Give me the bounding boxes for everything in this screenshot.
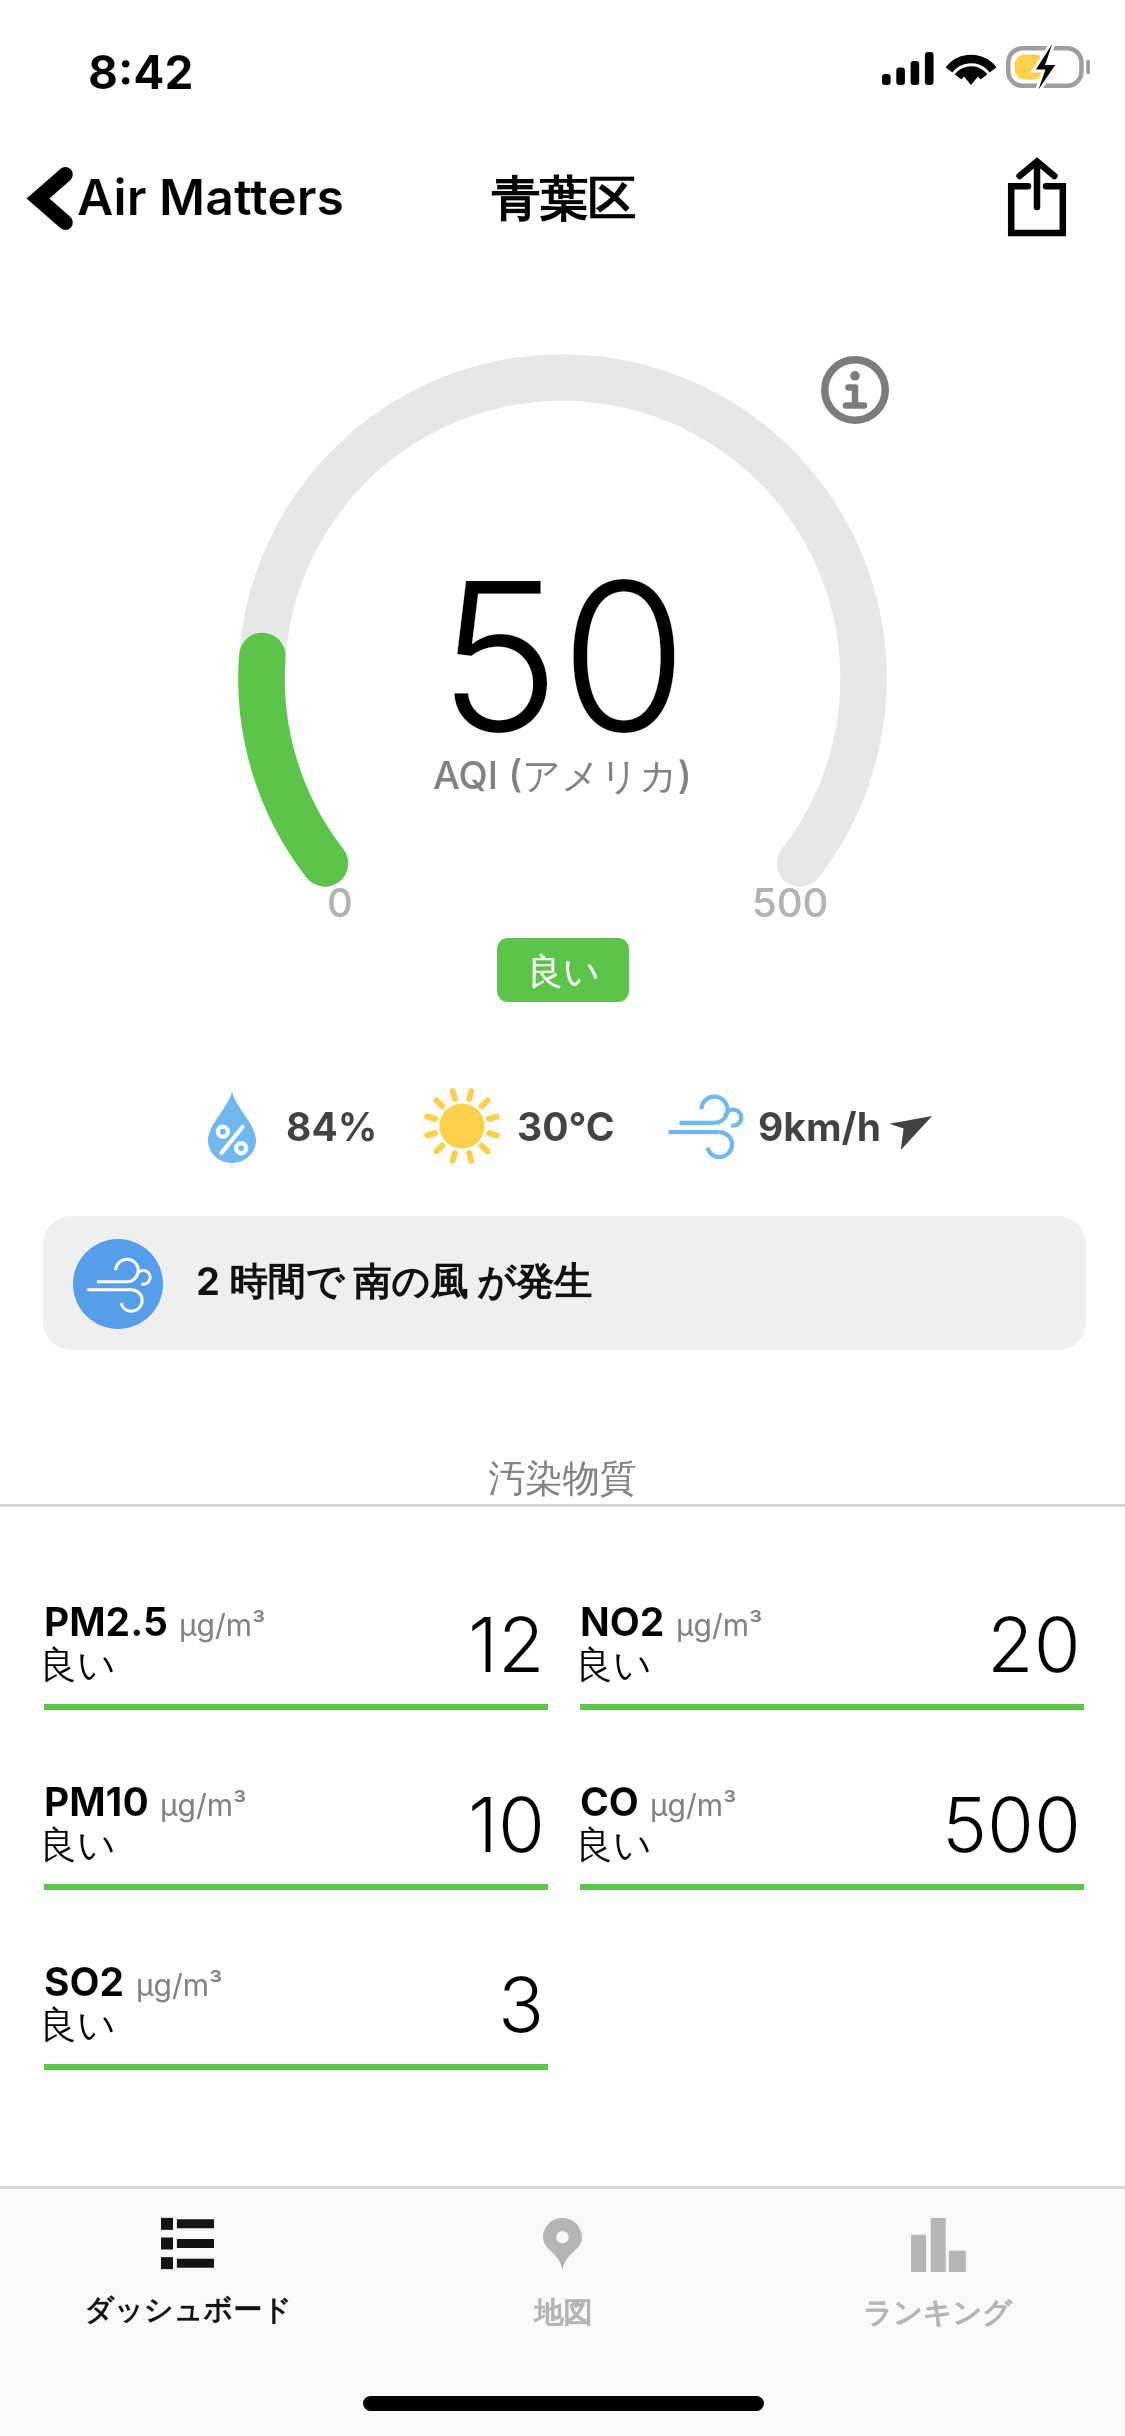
staticText: 良い (39, 1641, 116, 1689)
staticText: SO2 (44, 1958, 125, 2005)
button[interactable]: ランキング (750, 2196, 1125, 2346)
staticText: 20 (987, 1598, 1081, 1690)
staticText: 50 (438, 531, 688, 780)
staticText: 良い (575, 1821, 652, 1869)
staticText: ランキング (863, 2295, 1012, 2332)
button[interactable]: ダッシュボード (0, 2196, 375, 2346)
button[interactable]: 良い (497, 938, 629, 1002)
staticText: 8:42 (88, 44, 194, 100)
staticText: µg/m³ (179, 1607, 266, 1643)
button[interactable]: 地図 (375, 2196, 750, 2346)
staticText: 0 (327, 878, 353, 926)
staticText: 30°C (517, 1103, 615, 1150)
staticText: µg/m³ (650, 1787, 737, 1823)
staticText: 地図 (534, 2295, 592, 2332)
staticText: 500 (942, 1778, 1081, 1870)
button[interactable]: Air Matters (22, 159, 361, 238)
button[interactable]: NO2 (580, 1570, 1084, 1710)
button[interactable]: SO2 (44, 1930, 548, 2070)
staticText: NO2 (580, 1598, 665, 1645)
staticText: µg/m³ (136, 1967, 223, 2003)
staticText: 3 (498, 1958, 545, 2050)
staticText: ダッシュボード (84, 2292, 292, 2329)
staticText: 2 時間で 南の風 が発生 (196, 1258, 592, 1306)
button[interactable]: Share (987, 141, 1087, 255)
button[interactable]: 2 時間で 南の風 が発生 (43, 1216, 1086, 1350)
staticText: 12 (468, 1598, 545, 1690)
staticText: Air Matters (77, 167, 345, 227)
staticText: 青葉区 (491, 170, 635, 230)
button[interactable]: CO (580, 1750, 1084, 1890)
button[interactable]: Information (800, 335, 910, 445)
staticText: µg/m³ (160, 1787, 247, 1823)
staticText: 良い (527, 949, 600, 994)
staticText: 汚染物質 (0, 1455, 1125, 1502)
staticText: 良い (39, 2001, 116, 2049)
staticText: µg/m³ (676, 1607, 763, 1643)
button[interactable]: PM2.5 (44, 1570, 548, 1710)
staticText: 500 (752, 878, 829, 926)
staticText: CO (580, 1778, 639, 1825)
staticText: AQI (アメリカ) (433, 752, 692, 800)
staticText: 84% (286, 1103, 378, 1150)
staticText: 良い (575, 1641, 652, 1689)
staticText: 9km/h (758, 1103, 881, 1150)
staticText: 良い (39, 1821, 116, 1869)
staticText: PM2.5 (44, 1598, 168, 1645)
staticText: 10 (468, 1778, 545, 1870)
staticText: PM10 (44, 1778, 149, 1825)
button[interactable]: PM10 (44, 1750, 548, 1890)
